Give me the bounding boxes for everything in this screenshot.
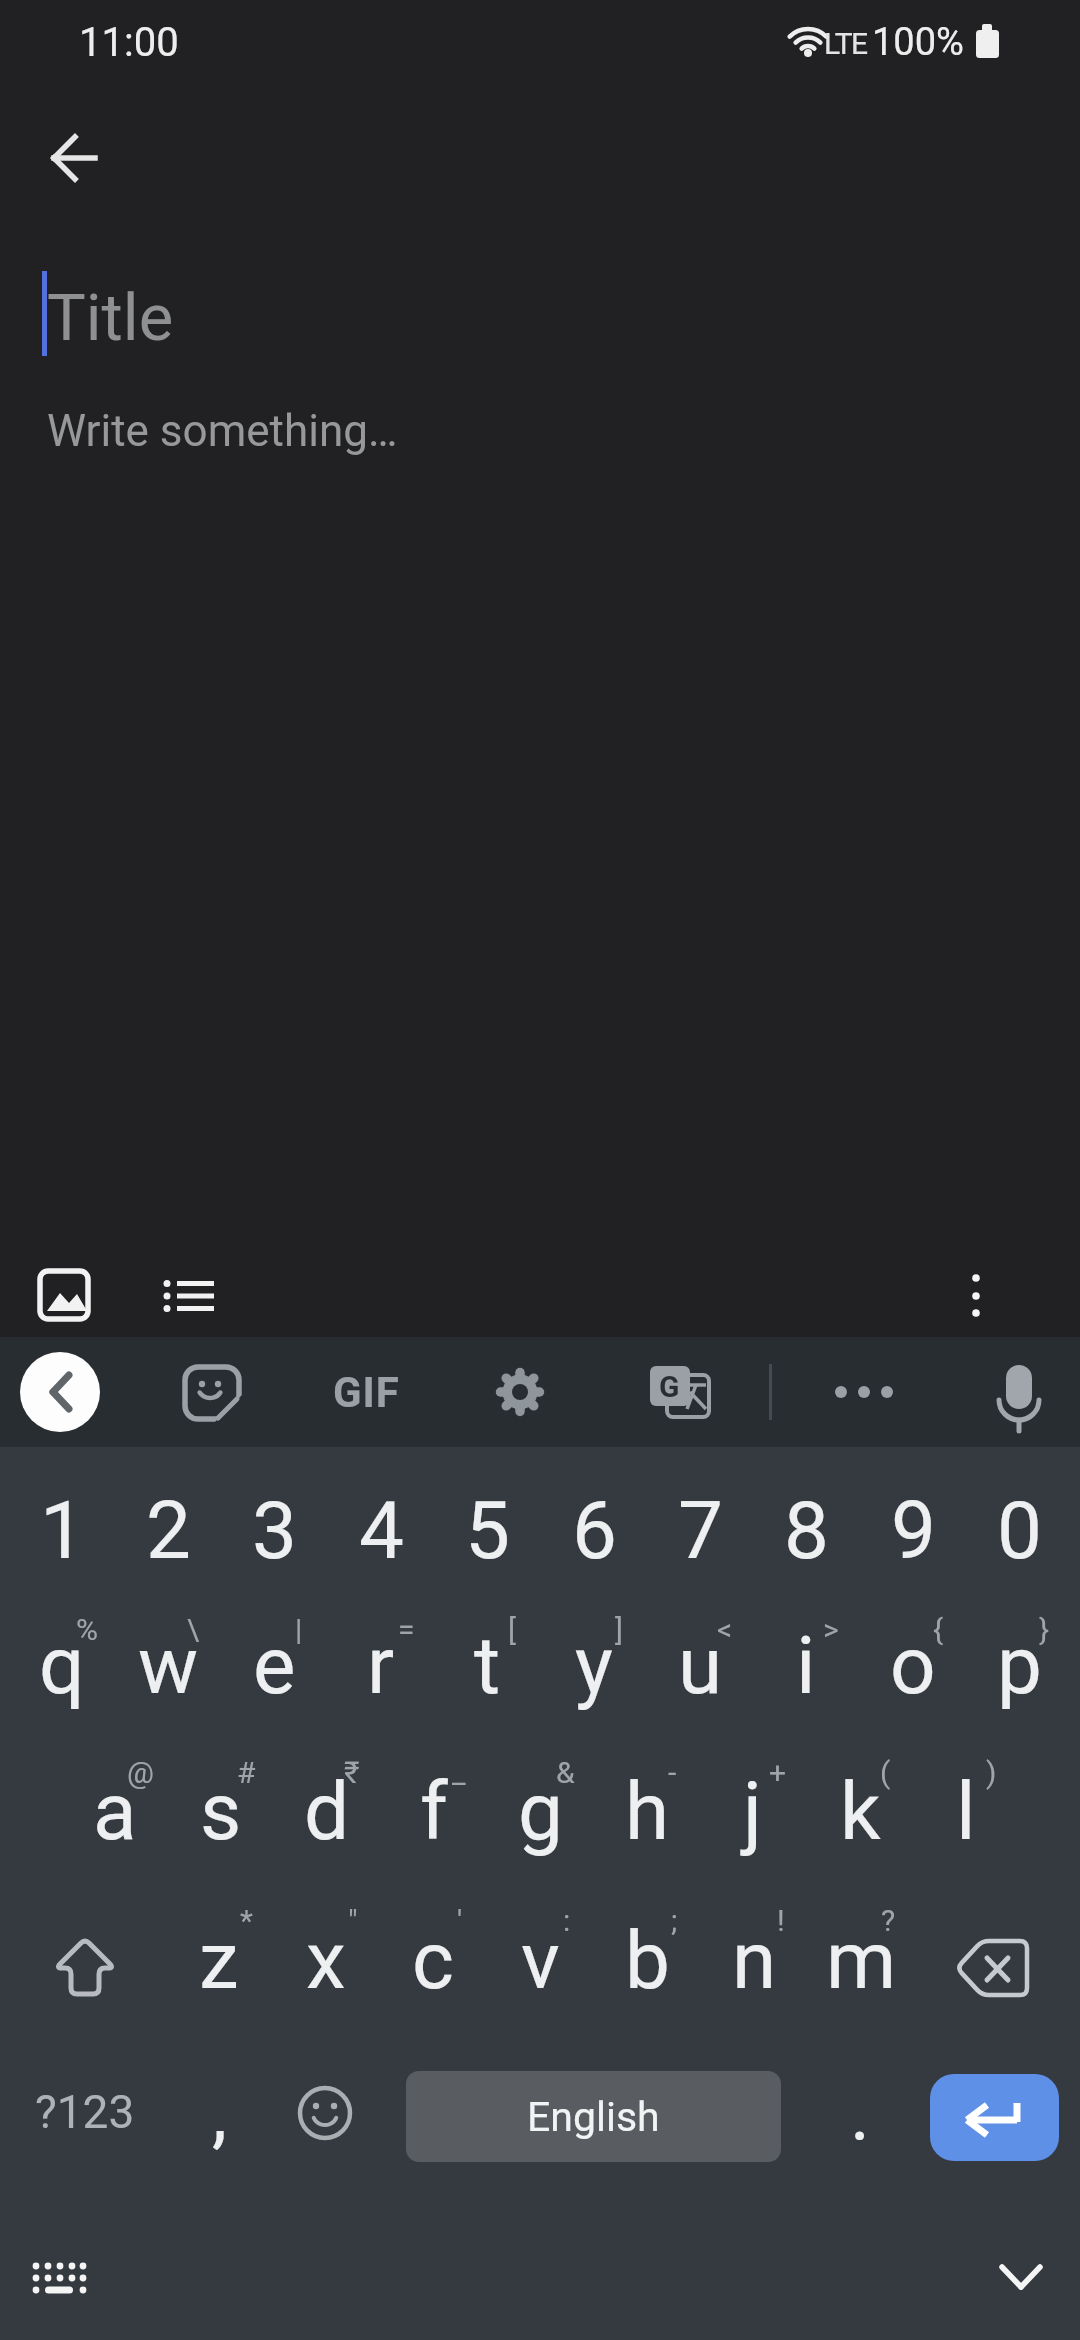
button[interactable] [28,1261,98,1331]
staticText: n [732,1914,777,2008]
button[interactable] [485,1357,555,1427]
button[interactable]: n [674,1891,834,2031]
staticText: ? [881,1903,896,1938]
staticText: ] [615,1612,623,1647]
button[interactable]: y [514,1596,674,1736]
staticText: f [420,1765,448,1859]
staticText: - [668,1755,677,1790]
staticText: u [678,1619,723,1713]
button[interactable]: l [886,1742,1046,1882]
button[interactable]: r [301,1596,461,1736]
staticText: \ [187,1612,200,1647]
staticText: c [412,1914,454,2008]
button[interactable] [984,1355,1054,1425]
staticText: % [76,1612,98,1647]
button[interactable]: t [407,1596,567,1736]
button[interactable]: 1 [0,1461,142,1601]
button[interactable]: Write something… [47,398,847,464]
button[interactable]: s [141,1742,301,1882]
staticText: p [997,1619,1042,1713]
staticText: i [796,1619,816,1713]
button[interactable]: 6 [514,1461,674,1601]
button[interactable]: 9 [833,1461,993,1601]
staticText: . [850,2068,871,2157]
button[interactable]: h [567,1742,727,1882]
staticText: 9 [891,1484,936,1578]
button[interactable]: a [35,1742,195,1882]
button[interactable]: v [460,1891,620,2031]
staticText: 1 [40,1484,85,1578]
staticText: _ [452,1755,466,1790]
button[interactable]: ?123 [5,2062,165,2162]
staticText: o [890,1619,936,1713]
button[interactable] [28,111,122,205]
button[interactable] [946,1266,1006,1326]
staticText: English [527,2093,660,2141]
button[interactable]: . [815,2052,905,2172]
button[interactable]: d [247,1742,407,1882]
staticText: g [518,1765,563,1859]
button[interactable]: x [246,1891,406,2031]
button[interactable] [943,1916,1043,2016]
staticText: # [237,1755,256,1790]
button[interactable]: p [939,1596,1080,1736]
staticText: : [563,1903,571,1938]
staticText: x [306,1914,346,2008]
button[interactable]: c [353,1891,513,2031]
staticText: ₹ [344,1755,360,1790]
button[interactable]: 3 [194,1461,354,1601]
button[interactable] [829,1357,899,1427]
button[interactable] [20,1352,100,1432]
staticText: } [1039,1612,1050,1647]
staticText: 6 [572,1484,617,1578]
button[interactable]: w [88,1596,248,1736]
staticText: > [823,1612,839,1647]
button[interactable]: q [0,1596,142,1736]
staticText: LTE [824,26,867,61]
button[interactable]: u [620,1596,780,1736]
button[interactable] [25,2242,95,2312]
button[interactable]: G [645,1358,715,1428]
button[interactable]: j [673,1742,833,1882]
staticText: 8 [784,1484,829,1578]
button[interactable]: GIF [286,1322,446,1462]
button[interactable]: Title [47,268,747,368]
button[interactable]: k [780,1742,940,1882]
staticText: ?123 [35,2085,135,2139]
button[interactable]: e [194,1596,354,1736]
staticText: l [956,1765,976,1859]
button[interactable] [35,1916,135,2016]
button[interactable]: m [781,1891,941,2031]
staticText: * [240,1903,253,1938]
button[interactable]: 7 [620,1461,780,1601]
button[interactable]: i [726,1596,886,1736]
button[interactable]: 5 [407,1461,567,1601]
staticText: { [933,1612,944,1647]
staticText: 5 [465,1484,510,1578]
staticText: < [717,1612,733,1647]
button[interactable]: z [139,1891,299,2031]
button[interactable]: f [354,1742,514,1882]
staticText: [ [508,1612,516,1647]
staticText: " [348,1903,358,1938]
button[interactable] [991,2247,1051,2307]
staticText: Write something… [47,405,398,457]
staticText: 4 [359,1484,404,1578]
button[interactable] [177,1358,247,1428]
button[interactable]: 2 [88,1461,248,1601]
button[interactable]: 4 [301,1461,461,1601]
staticText: w [138,1619,199,1713]
button[interactable]: , [174,2052,264,2172]
button[interactable]: b [567,1891,727,2031]
button[interactable]: English [406,2071,781,2162]
button[interactable]: o [833,1596,993,1736]
staticText: 11:00 [79,19,179,66]
staticText: v [521,1914,560,2008]
button[interactable]: 8 [726,1461,886,1601]
button[interactable] [285,2073,365,2153]
button[interactable]: g [460,1742,620,1882]
button[interactable]: 0 [939,1461,1080,1601]
staticText: s [200,1765,242,1859]
button[interactable] [930,2074,1059,2161]
button[interactable] [152,1261,222,1331]
